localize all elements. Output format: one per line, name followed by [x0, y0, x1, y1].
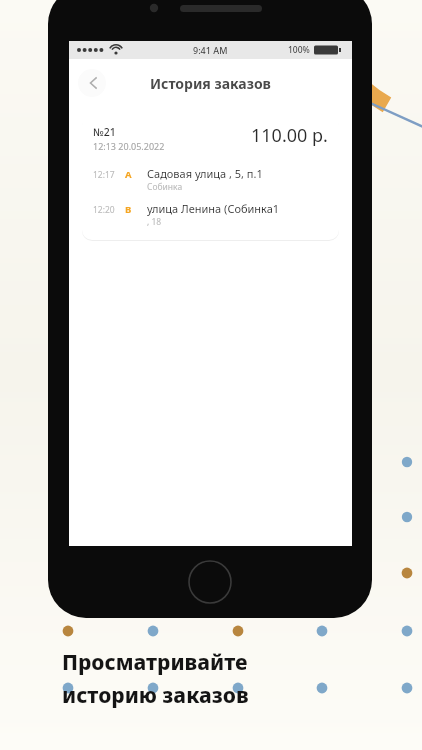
staticText: 12:13 20.05.2022 [93, 140, 165, 152]
button[interactable]: Back [78, 69, 106, 97]
staticText: 9:41 AM [193, 44, 228, 56]
staticText: 12:20 [93, 204, 125, 216]
staticText: История заказов [150, 74, 271, 93]
staticText: историю заказов [62, 681, 249, 710]
staticText: 100% [288, 44, 310, 56]
button[interactable]: №21 [82, 115, 339, 240]
staticText: A [125, 168, 147, 181]
staticText: 110.00 р. [251, 123, 328, 148]
staticText: №21 [93, 125, 116, 139]
staticText: улица Ленина (Собинка1 [147, 201, 280, 216]
staticText: Садовая улица , 5, п.1 [147, 166, 263, 181]
staticText: B [125, 203, 147, 216]
staticText: Собинка [147, 181, 183, 193]
staticText: 12:17 [93, 169, 125, 181]
staticText: , 18 [147, 216, 162, 228]
staticText: Просматривайте [62, 648, 248, 677]
